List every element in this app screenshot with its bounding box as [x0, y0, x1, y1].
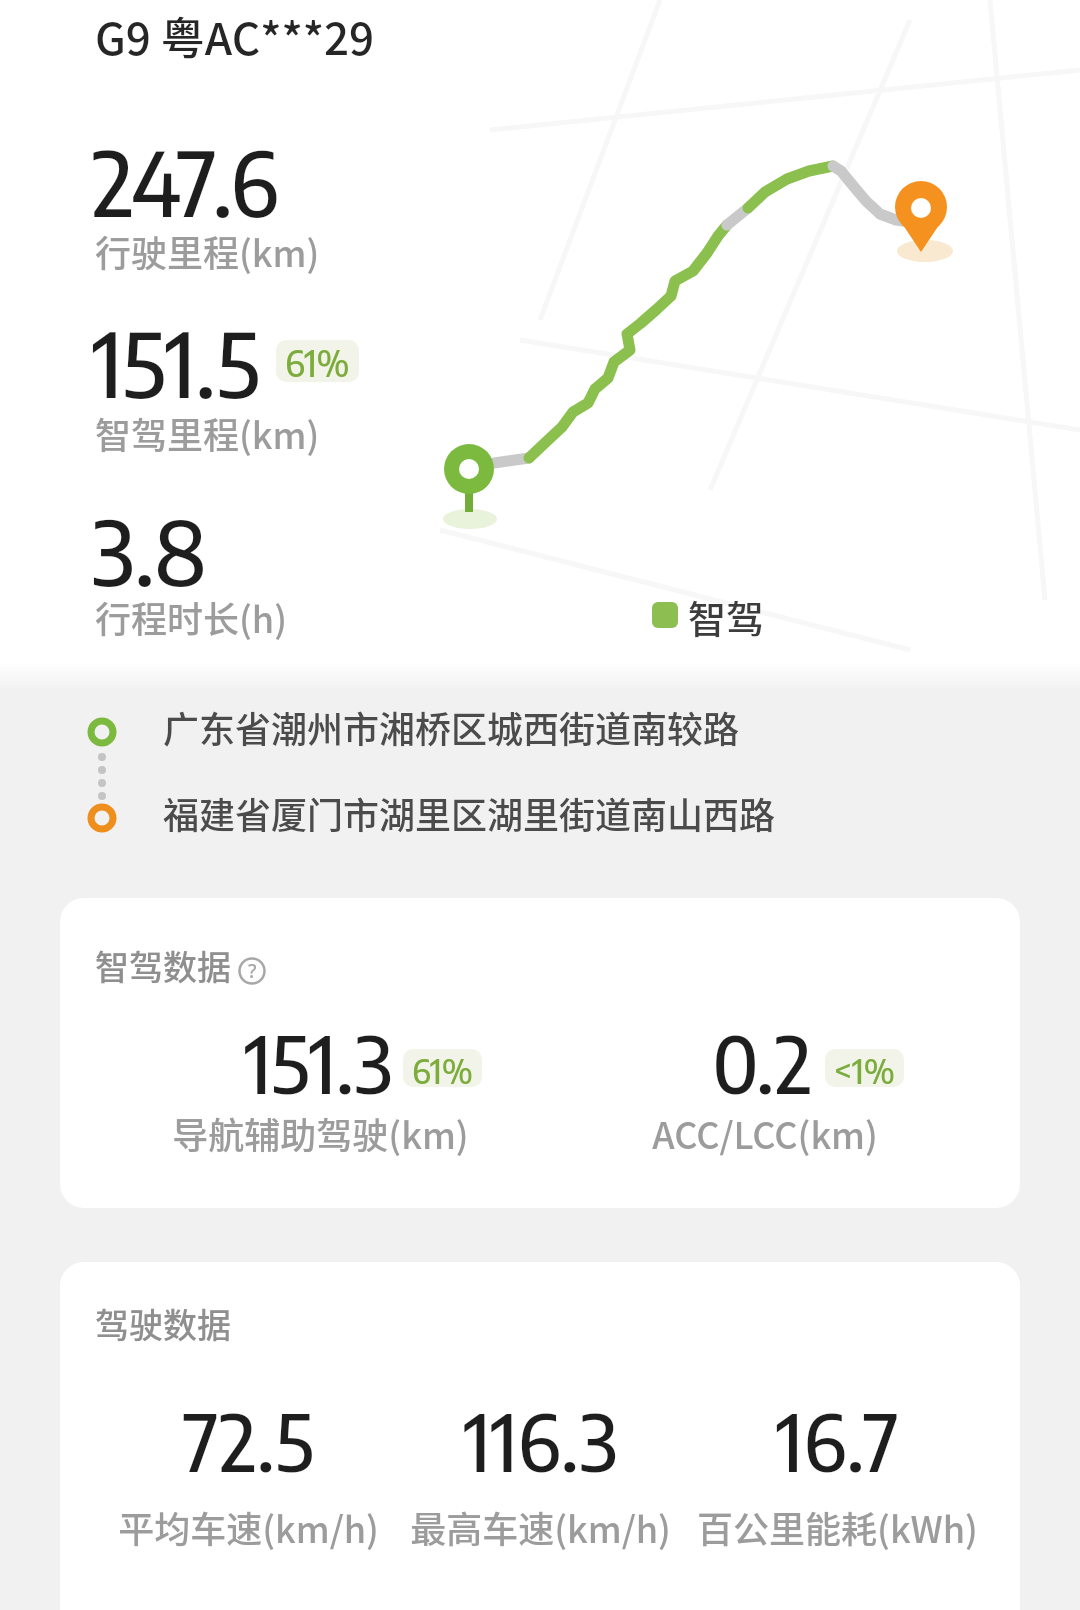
staticText: <1% [834, 1049, 895, 1087]
staticText: 0.2 [712, 1014, 812, 1111]
staticText: 导航辅助驾驶(km) [172, 1107, 469, 1159]
staticText: 151.5 [92, 307, 260, 417]
staticText: G9 粤AC***29 [95, 4, 375, 68]
staticText: 驾驶数据 [95, 1299, 231, 1348]
staticText: 最高车速(km/h) [410, 1501, 671, 1553]
staticText: 平均车速(km/h) [118, 1501, 379, 1553]
staticText: 智驾里程(km) [95, 407, 320, 459]
button[interactable]: 智驾数据 [60, 898, 1020, 1208]
staticText: 智驾 [688, 589, 765, 644]
staticText: 广东省潮州市湘桥区城西街道南较路 [163, 701, 740, 753]
button[interactable]: 广东省潮州市湘桥区城西街道南较路 [163, 701, 740, 753]
staticText: ACC/LCC(km) [652, 1107, 878, 1159]
staticText: 72.5 [183, 1392, 314, 1489]
staticText: 247.6 [92, 126, 279, 236]
staticText: 61% [285, 340, 350, 382]
staticText: 16.7 [776, 1392, 899, 1489]
staticText: 百公里能耗(kWh) [697, 1501, 978, 1553]
staticText: 行程时长(h) [95, 591, 287, 643]
staticText: 智驾数据 [95, 941, 231, 990]
staticText: 116.3 [463, 1392, 618, 1489]
button[interactable]: 福建省厦门市湖里区湖里街道南山西路 [163, 787, 776, 839]
staticText: 61% [412, 1049, 473, 1087]
button[interactable]: 驾驶数据 [60, 1262, 1020, 1610]
staticText: 福建省厦门市湖里区湖里街道南山西路 [163, 787, 776, 839]
button[interactable]: ? [238, 957, 266, 985]
staticText: 行驶里程(km) [95, 225, 320, 277]
staticText: 3.8 [92, 495, 207, 605]
staticText: 151.3 [244, 1014, 393, 1111]
staticText: ? [248, 958, 257, 984]
